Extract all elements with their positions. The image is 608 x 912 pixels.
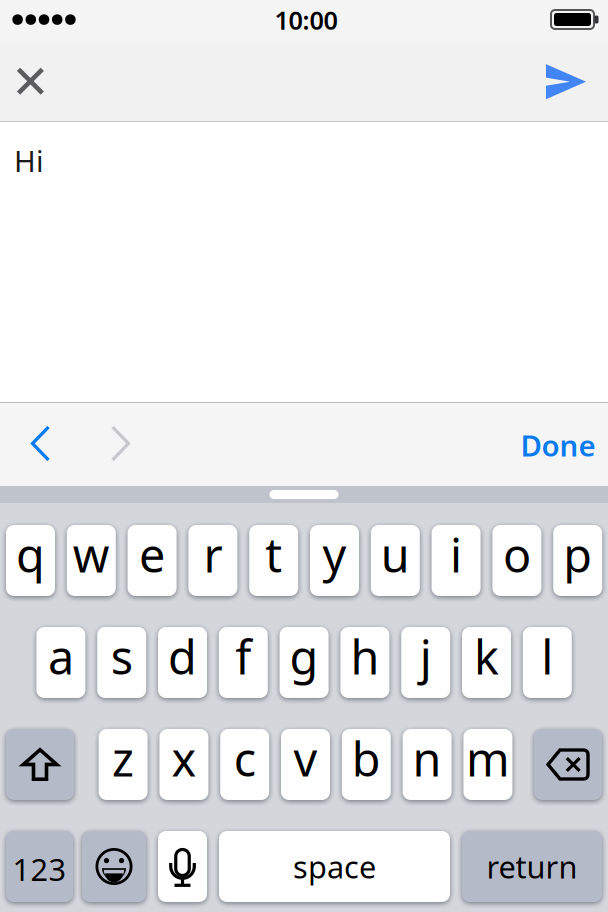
staticText: Done [520, 425, 595, 464]
button[interactable]: Shift [6, 729, 74, 800]
button[interactable]: g [280, 627, 329, 698]
button[interactable]: h [340, 627, 389, 698]
staticText: g [290, 625, 319, 687]
button[interactable]: p [553, 525, 602, 596]
staticText: d [168, 625, 197, 687]
button[interactable]: t [249, 525, 298, 596]
button[interactable]: Dictation [158, 831, 207, 902]
staticText: l [541, 625, 553, 687]
button[interactable]: a [36, 627, 85, 698]
staticText: Hi [14, 141, 44, 180]
button[interactable]: Emoji [82, 831, 146, 902]
staticText: j [420, 625, 432, 687]
button[interactable]: m [463, 729, 512, 800]
staticText: return [486, 846, 577, 887]
button[interactable]: x [159, 729, 208, 800]
staticText: q [16, 523, 45, 585]
button[interactable]: b [342, 729, 391, 800]
button[interactable]: n [403, 729, 452, 800]
button[interactable]: f [219, 627, 268, 698]
staticText: v [293, 727, 317, 789]
button[interactable]: Next field [93, 412, 147, 474]
staticText: h [350, 625, 379, 687]
button[interactable]: Send [535, 50, 597, 114]
staticText: z [112, 727, 134, 789]
button[interactable]: space [219, 831, 450, 902]
staticText: o [503, 523, 531, 585]
button[interactable]: w [67, 525, 116, 596]
button[interactable]: Delete [534, 729, 602, 800]
staticText: s [111, 625, 133, 687]
button[interactable]: 123 [6, 831, 73, 902]
button[interactable]: s [97, 627, 146, 698]
staticText: e [139, 523, 165, 585]
button[interactable]: Done [510, 414, 606, 476]
button[interactable]: d [158, 627, 207, 698]
staticText: p [563, 523, 592, 585]
button[interactable]: e [128, 525, 177, 596]
button[interactable]: y [310, 525, 359, 596]
staticText: u [381, 523, 410, 585]
button[interactable]: u [371, 525, 420, 596]
staticText: k [474, 625, 499, 687]
button[interactable]: q [6, 525, 55, 596]
staticText: 123 [12, 849, 66, 889]
staticText: y [322, 523, 346, 585]
button[interactable]: return [462, 831, 602, 902]
button[interactable]: c [220, 729, 269, 800]
staticText: w [73, 523, 110, 585]
staticText: 10:00 [274, 3, 337, 37]
button[interactable]: k [462, 627, 511, 698]
staticText: x [171, 727, 196, 789]
staticText: r [203, 523, 222, 585]
staticText: i [450, 523, 462, 585]
button[interactable]: v [281, 729, 330, 800]
button[interactable]: z [99, 729, 148, 800]
staticText: b [352, 727, 381, 789]
staticText: a [48, 625, 74, 687]
button[interactable]: r [188, 525, 237, 596]
staticText: space [293, 846, 376, 887]
button[interactable]: j [401, 627, 450, 698]
button[interactable]: i [432, 525, 481, 596]
button[interactable]: Close [0, 49, 60, 113]
staticText: t [265, 523, 282, 585]
staticText: c [234, 727, 256, 789]
staticText: n [413, 727, 442, 789]
staticText: f [235, 625, 251, 687]
button[interactable]: Previous field [13, 412, 67, 474]
button[interactable]: o [492, 525, 541, 596]
button[interactable]: l [523, 627, 572, 698]
staticText: m [466, 727, 510, 789]
